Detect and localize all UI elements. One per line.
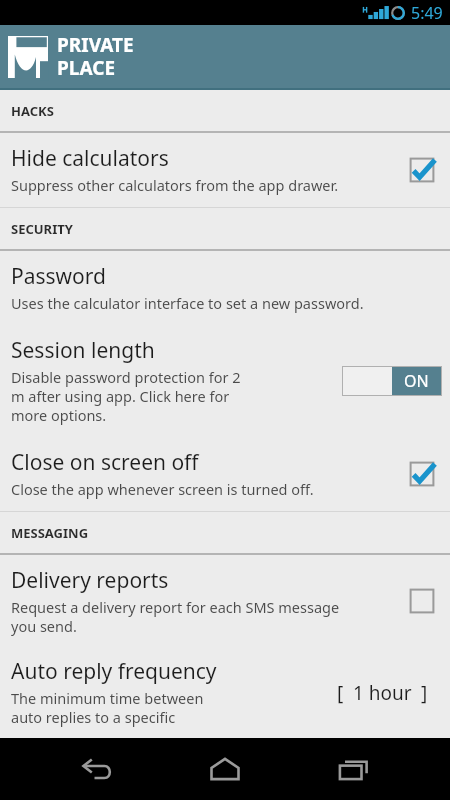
staticText: Suppress other calculators from the app … xyxy=(11,175,396,195)
button[interactable]: Delivery reports xyxy=(0,555,450,648)
staticText: The minimum time between auto replies to… xyxy=(11,688,225,729)
button[interactable]: Recent apps xyxy=(321,738,387,800)
button[interactable]: Back xyxy=(63,738,129,800)
staticText: Request a delivery report for each SMS m… xyxy=(11,597,346,636)
button[interactable]: Session length xyxy=(0,325,450,437)
staticText: ON xyxy=(404,370,429,392)
staticText: Delivery reports xyxy=(11,566,169,595)
button[interactable]: Hide calculators xyxy=(0,133,450,207)
button[interactable]: Password xyxy=(0,251,450,325)
staticText: HACKS xyxy=(11,102,54,120)
button[interactable]: Close on screen off xyxy=(0,437,450,511)
button[interactable]: [ xyxy=(323,674,442,712)
staticText: Password xyxy=(11,262,106,291)
button[interactable]: Checked xyxy=(402,150,442,190)
staticText: PRIVATE xyxy=(57,32,134,58)
button[interactable]: Unchecked xyxy=(402,581,442,621)
button[interactable]: Checked xyxy=(402,454,442,494)
staticText: ] xyxy=(421,680,428,706)
staticText: Uses the calculator interface to set a n… xyxy=(11,293,442,313)
staticText: 1 hour xyxy=(353,680,412,706)
staticText: MESSAGING xyxy=(11,524,89,542)
staticText: SECURITY xyxy=(11,220,73,238)
staticText: [ xyxy=(337,680,344,706)
staticText: Auto reply frequency xyxy=(11,657,217,686)
button[interactable]: Home xyxy=(192,738,258,800)
button[interactable]: Session length toggle, on xyxy=(342,366,442,396)
staticText: Close on screen off xyxy=(11,448,199,477)
staticText: Hide calculators xyxy=(11,144,169,173)
staticText: Close the app whenever screen is turned … xyxy=(11,479,396,499)
staticText: PLACE xyxy=(57,55,116,81)
staticText: 5:49 xyxy=(411,2,443,24)
button[interactable]: Auto reply frequency xyxy=(0,648,450,738)
staticText: Disable password protection for 2 m afte… xyxy=(11,367,245,425)
staticText: Session length xyxy=(11,336,155,365)
